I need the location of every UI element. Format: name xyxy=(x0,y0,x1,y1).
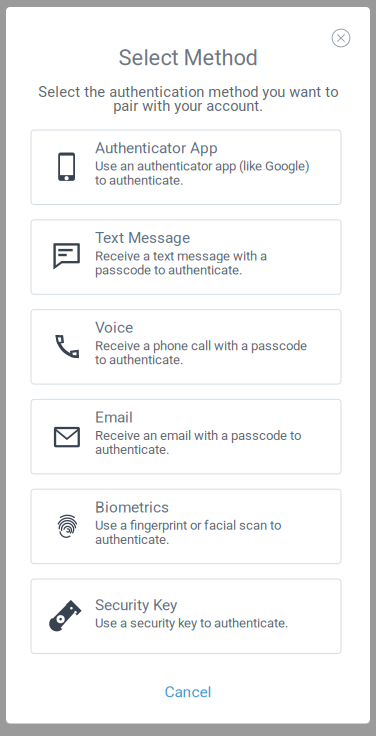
button[interactable]: Security Key xyxy=(31,579,341,653)
staticText: Authenticator App xyxy=(95,139,218,157)
staticText: Biometrics xyxy=(95,498,169,516)
button[interactable]: Voice xyxy=(31,310,341,384)
staticText: Email xyxy=(95,408,133,426)
button[interactable]: Text Message xyxy=(31,220,341,294)
button[interactable]: Cancel xyxy=(6,675,370,709)
button[interactable]: Authenticator App xyxy=(31,130,341,204)
staticText: Select Method xyxy=(118,45,257,71)
staticText: Receive a phone call with a passcode to … xyxy=(95,338,307,367)
button[interactable]: Email xyxy=(31,399,341,474)
staticText: Receive an email with a passcode to auth… xyxy=(95,428,301,457)
staticText: Voice xyxy=(95,319,133,337)
staticText: Use an authenticator app (like Google) t… xyxy=(95,158,310,188)
staticText: Security Key xyxy=(95,596,177,614)
staticText: Text Message xyxy=(95,229,190,247)
staticText: Use a fingerprint or facial scan to auth… xyxy=(95,518,281,547)
staticText: Cancel xyxy=(164,683,211,701)
staticText: Receive a text message with a passcode t… xyxy=(95,248,267,278)
button[interactable]: Close xyxy=(326,23,356,53)
button[interactable]: Biometrics xyxy=(31,489,341,564)
staticText: Select the authentication method you wan… xyxy=(38,83,338,115)
staticText: Use a security key to authenticate. xyxy=(95,615,288,631)
